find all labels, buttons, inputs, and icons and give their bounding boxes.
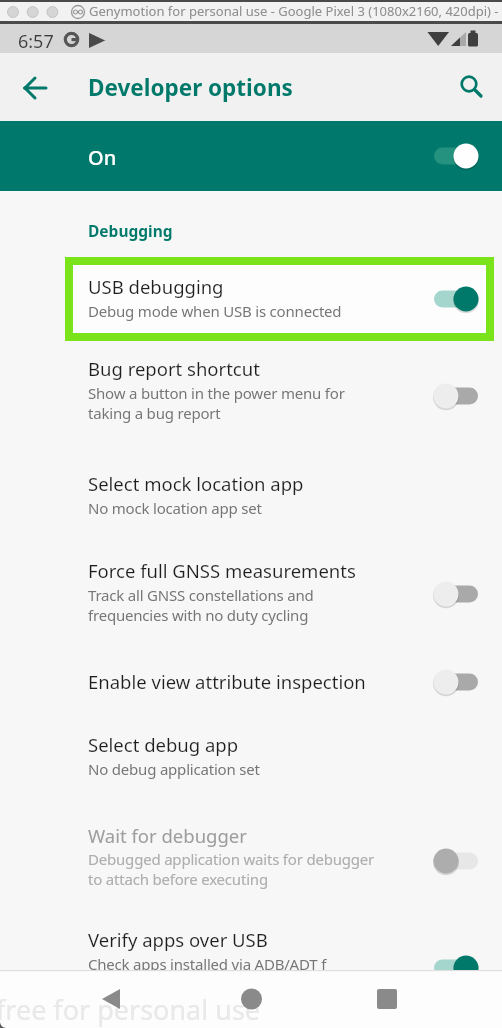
staticText: Developer options: [88, 72, 293, 103]
staticText: Verify apps over USB: [88, 927, 268, 952]
button[interactable]: [65, 726, 502, 786]
button[interactable]: [434, 143, 478, 169]
staticText: to attach before executing: [88, 869, 268, 889]
staticText: Track all GNSS constellations and: [88, 585, 314, 605]
staticText: Show a button in the power menu for: [88, 383, 345, 403]
button[interactable]: [434, 669, 478, 695]
staticText: No debug application set: [88, 759, 260, 779]
staticText: Debugging: [88, 220, 173, 241]
button[interactable]: [221, 980, 281, 1024]
staticText: Wait for debugger: [88, 823, 247, 848]
button[interactable]: [434, 286, 478, 312]
button[interactable]: [90, 980, 150, 1024]
staticText: Select mock location app: [88, 471, 304, 496]
button[interactable]: [65, 465, 502, 525]
staticText: Force full GNSS measurements: [88, 558, 356, 583]
button[interactable]: [65, 920, 502, 970]
staticText: taking a bug report: [88, 403, 221, 423]
button[interactable]: [352, 980, 412, 1024]
staticText: free for personal use: [0, 991, 261, 1028]
button[interactable]: [65, 662, 502, 707]
button[interactable]: [434, 383, 478, 409]
button[interactable]: [73, 265, 486, 333]
staticText: Debugged application waits for debugger: [88, 849, 375, 869]
button[interactable]: [65, 552, 502, 642]
button[interactable]: [12, 64, 60, 112]
staticText: On: [88, 144, 117, 171]
button[interactable]: [65, 350, 502, 440]
staticText: Enable view attribute inspection: [88, 669, 366, 694]
button[interactable]: [0, 121, 502, 191]
button[interactable]: [445, 64, 493, 112]
button[interactable]: [434, 848, 478, 874]
staticText: Check apps installed via ADB/ADT f: [88, 954, 327, 974]
staticText: 6:57: [18, 29, 54, 54]
button[interactable]: [434, 955, 478, 981]
staticText: Debug mode when USB is connected: [88, 301, 342, 321]
button[interactable]: [434, 581, 478, 607]
staticText: Bug report shortcut: [88, 356, 260, 381]
staticText: Select debug app: [88, 732, 239, 757]
staticText: Genymotion for personal use - Google Pix…: [89, 2, 502, 20]
staticText: frequencies with no duty cycling: [88, 605, 309, 625]
staticText: No mock location app set: [88, 498, 262, 518]
staticText: USB debugging: [88, 274, 224, 299]
